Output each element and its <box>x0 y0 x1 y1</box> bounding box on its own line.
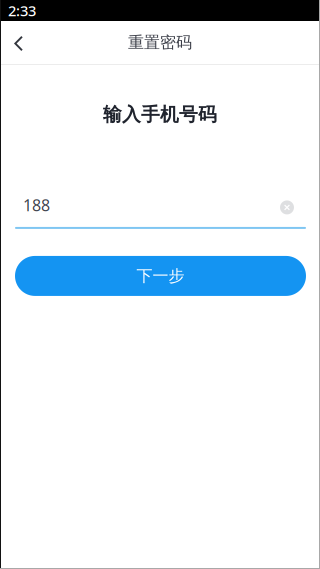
staticText: 重置密码 <box>128 33 192 52</box>
staticText: 输入手机号码 <box>103 103 217 126</box>
staticText: 下一步 <box>136 266 184 286</box>
button[interactable]: Back <box>0 21 52 64</box>
staticText: 2:33 <box>8 1 36 20</box>
staticText: 188 <box>23 194 50 215</box>
button[interactable]: Clear phone number <box>270 188 304 222</box>
button[interactable]: 下一步 <box>15 256 306 296</box>
